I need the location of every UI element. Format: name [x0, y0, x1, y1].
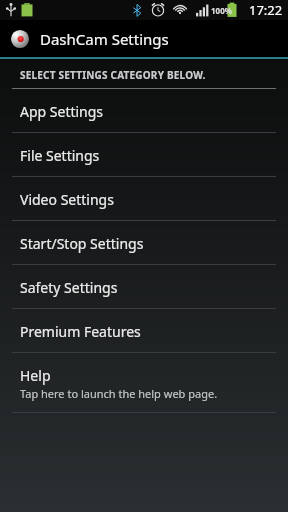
button[interactable]: App Settings — [0, 89, 288, 132]
button[interactable]: Help — [0, 353, 288, 412]
button[interactable]: Premium Features — [0, 309, 288, 352]
staticText: SELECT SETTINGS CATEGORY BELOW. — [20, 68, 206, 82]
button[interactable]: Safety Settings — [0, 265, 288, 308]
button[interactable]: File Settings — [0, 133, 288, 176]
staticText: Premium Features — [20, 322, 141, 341]
button[interactable]: Video Settings — [0, 177, 288, 220]
staticText: App Settings — [20, 102, 104, 121]
button[interactable]: Start/Stop Settings — [0, 221, 288, 264]
staticText: 100% — [211, 5, 232, 16]
staticText: Tap here to launch the help web page. — [20, 386, 218, 401]
staticText: Start/Stop Settings — [20, 234, 144, 253]
staticText: 17:22 — [249, 1, 283, 19]
staticText: DashCam Settings — [40, 29, 169, 49]
staticText: Help — [20, 366, 51, 385]
staticText: Video Settings — [20, 190, 114, 209]
staticText: File Settings — [20, 146, 100, 165]
staticText: Safety Settings — [20, 278, 118, 297]
